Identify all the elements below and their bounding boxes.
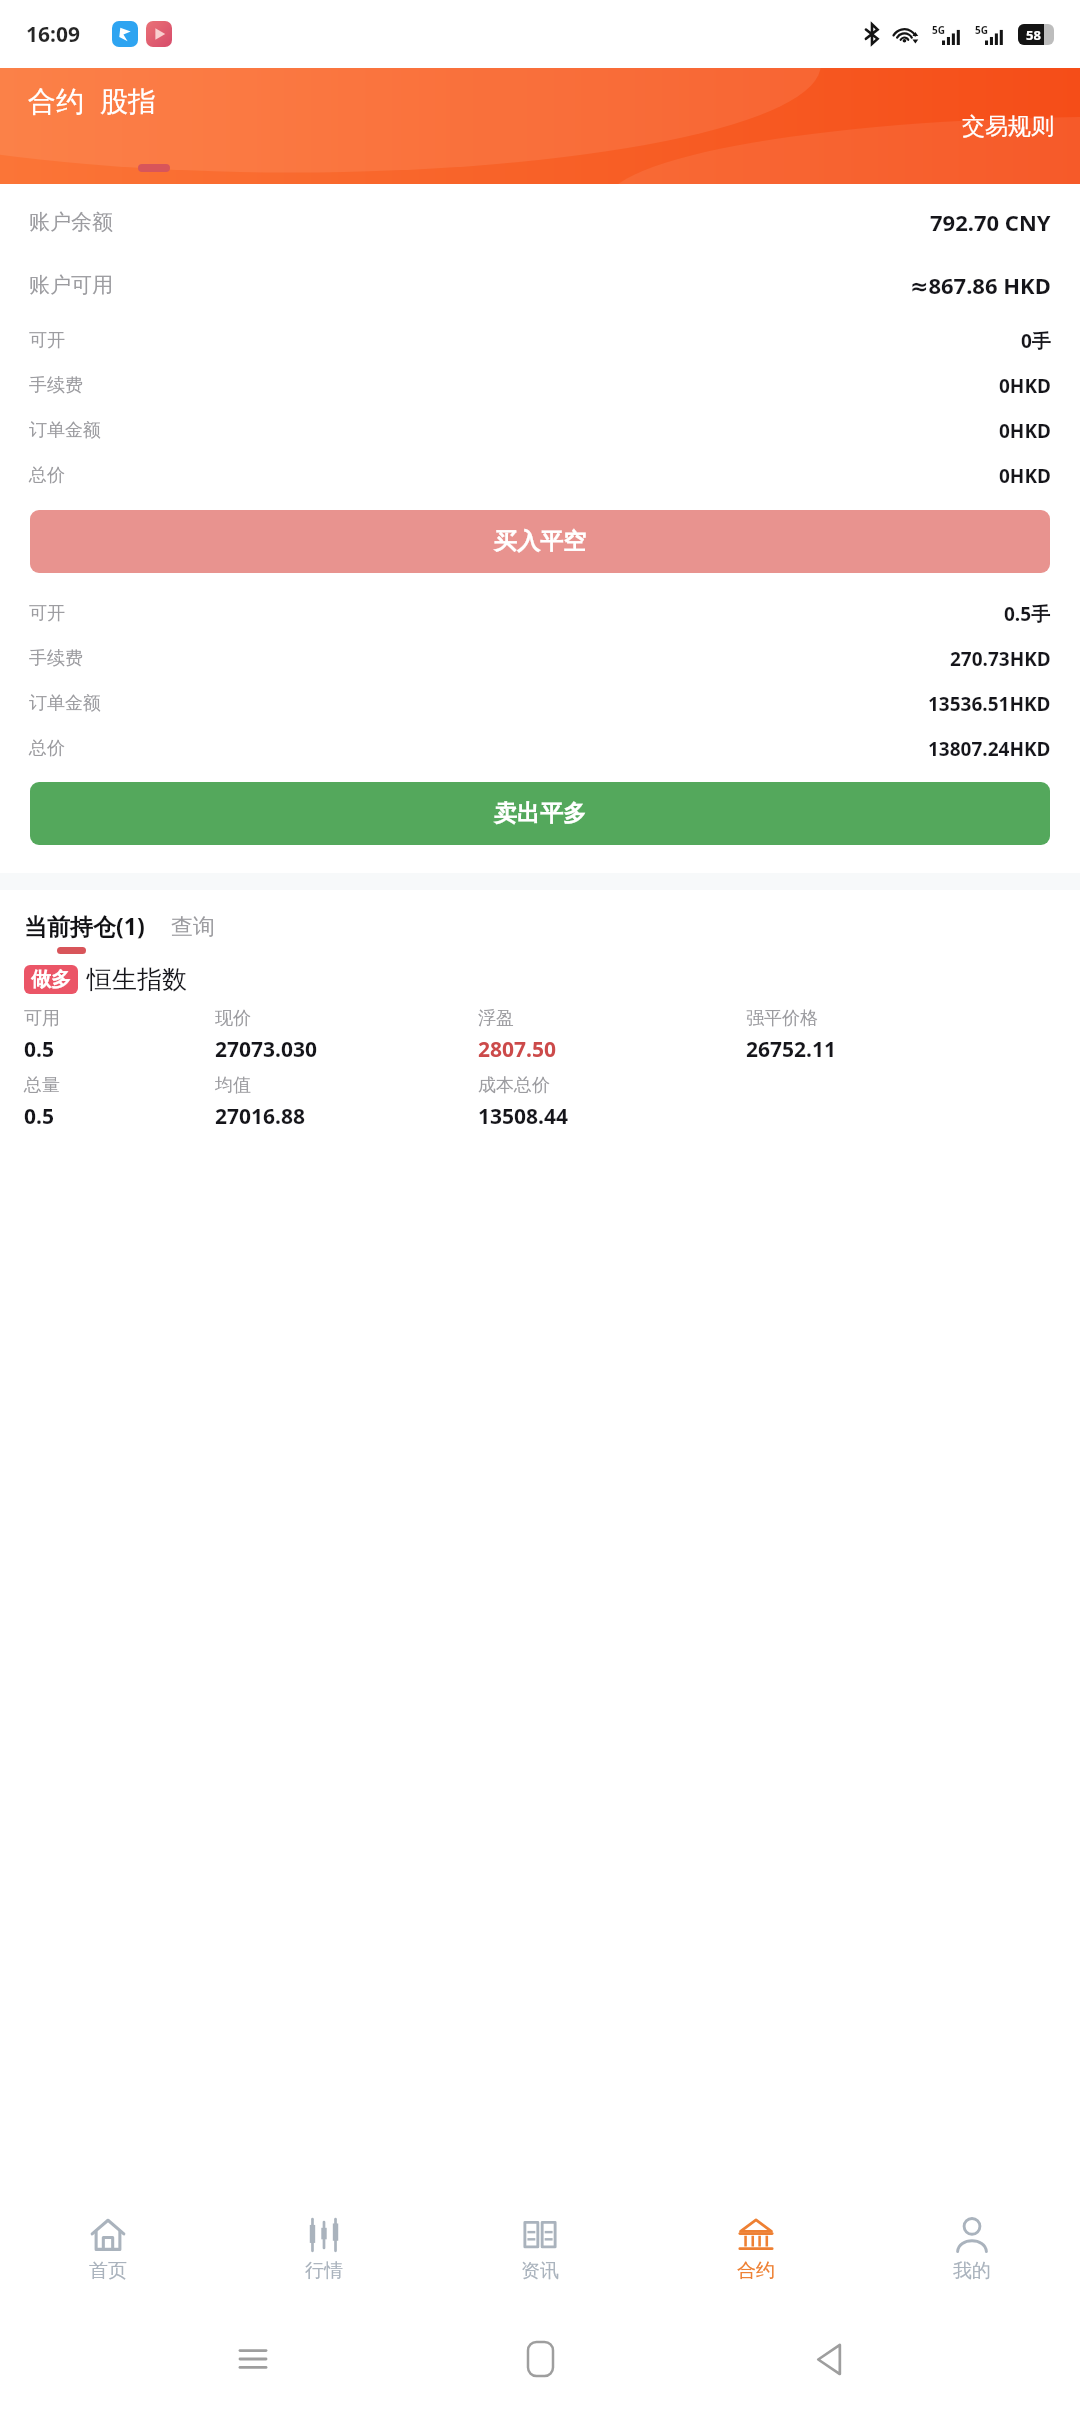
staticText: 账户余额 — [29, 209, 113, 235]
staticText: 0HKD — [999, 418, 1051, 444]
staticText: 订单金额 — [29, 692, 101, 715]
staticText: 0.5 — [24, 1035, 54, 1064]
button[interactable]: 账户可用 — [29, 253, 1051, 316]
staticText: 订单金额 — [29, 419, 101, 442]
staticText: 5G — [975, 23, 988, 37]
staticText: 可开 — [29, 602, 65, 625]
staticText: 270.73HKD — [950, 646, 1051, 672]
button[interactable]: 合约 — [648, 2190, 864, 2310]
staticText: 16:09 — [26, 20, 80, 49]
staticText: 可开 — [29, 329, 65, 352]
staticText: 浮盈 — [478, 1007, 514, 1030]
button[interactable]: Home — [505, 2324, 575, 2394]
staticText: 可用 — [24, 1007, 60, 1030]
staticText: 行情 — [305, 2259, 343, 2283]
staticText: 0.5 — [24, 1102, 54, 1131]
button[interactable]: 买入平空 — [30, 510, 1050, 573]
staticText: 资讯 — [521, 2259, 559, 2283]
staticText: 0手 — [1021, 328, 1051, 354]
staticText: 2807.50 — [478, 1035, 556, 1064]
staticText: 0HKD — [999, 373, 1051, 399]
staticText: 13807.24HKD — [928, 736, 1051, 762]
staticText: 做多 — [31, 967, 71, 992]
staticText: 792.70 CNY — [930, 207, 1051, 237]
staticText: 26752.11 — [746, 1035, 836, 1064]
staticText: 卖出平多 — [494, 799, 586, 828]
staticText: 13536.51HKD — [928, 691, 1051, 717]
staticText: 合约 — [28, 84, 84, 119]
staticText: 现价 — [215, 1007, 251, 1030]
staticText: 查询 — [171, 913, 215, 941]
button[interactable]: 我的 — [864, 2190, 1080, 2310]
staticText: ≈867.86 HKD — [910, 270, 1051, 300]
staticText: 5G — [932, 23, 945, 37]
button[interactable]: Back — [793, 2324, 863, 2394]
staticText: 强平价格 — [746, 1007, 818, 1030]
staticText: 买入平空 — [494, 527, 586, 556]
button[interactable]: Recent apps — [218, 2324, 288, 2394]
staticText: 首页 — [89, 2259, 127, 2283]
staticText: 手续费 — [29, 647, 83, 670]
staticText: 成本总价 — [478, 1074, 550, 1097]
staticText: 0.5手 — [1004, 601, 1051, 627]
staticText: 手续费 — [29, 374, 83, 397]
staticText: 27016.88 — [215, 1102, 305, 1131]
staticText: 合约 — [737, 2259, 775, 2283]
staticText: 账户可用 — [29, 272, 113, 298]
button[interactable]: 资讯 — [432, 2190, 648, 2310]
button[interactable]: 查询 — [171, 913, 215, 941]
staticText: 0HKD — [999, 463, 1051, 489]
button[interactable]: 卖出平多 — [30, 782, 1050, 845]
button[interactable]: 合约 — [28, 84, 84, 119]
button[interactable]: 首页 — [0, 2190, 216, 2310]
staticText: 58 — [1026, 26, 1041, 44]
staticText: 总量 — [24, 1074, 60, 1097]
staticText: 总价 — [29, 464, 65, 487]
staticText: 13508.44 — [478, 1102, 568, 1131]
staticText: 交易规则 — [962, 112, 1054, 141]
button[interactable]: 交易规则 — [962, 112, 1054, 141]
button[interactable]: 股指 — [100, 84, 156, 119]
staticText: 当前持仓(1) — [24, 910, 145, 941]
staticText: 27073.030 — [215, 1035, 317, 1064]
button[interactable]: 账户余额 — [29, 190, 1051, 253]
staticText: 恒生指数 — [87, 964, 187, 995]
staticText: 总价 — [29, 737, 65, 760]
button[interactable]: 当前持仓(1) — [24, 910, 145, 941]
button[interactable]: 做多 — [24, 964, 1056, 1131]
staticText: 均值 — [215, 1074, 251, 1097]
staticText: 股指 — [100, 84, 156, 119]
staticText: 我的 — [953, 2259, 991, 2283]
button[interactable]: 行情 — [216, 2190, 432, 2310]
